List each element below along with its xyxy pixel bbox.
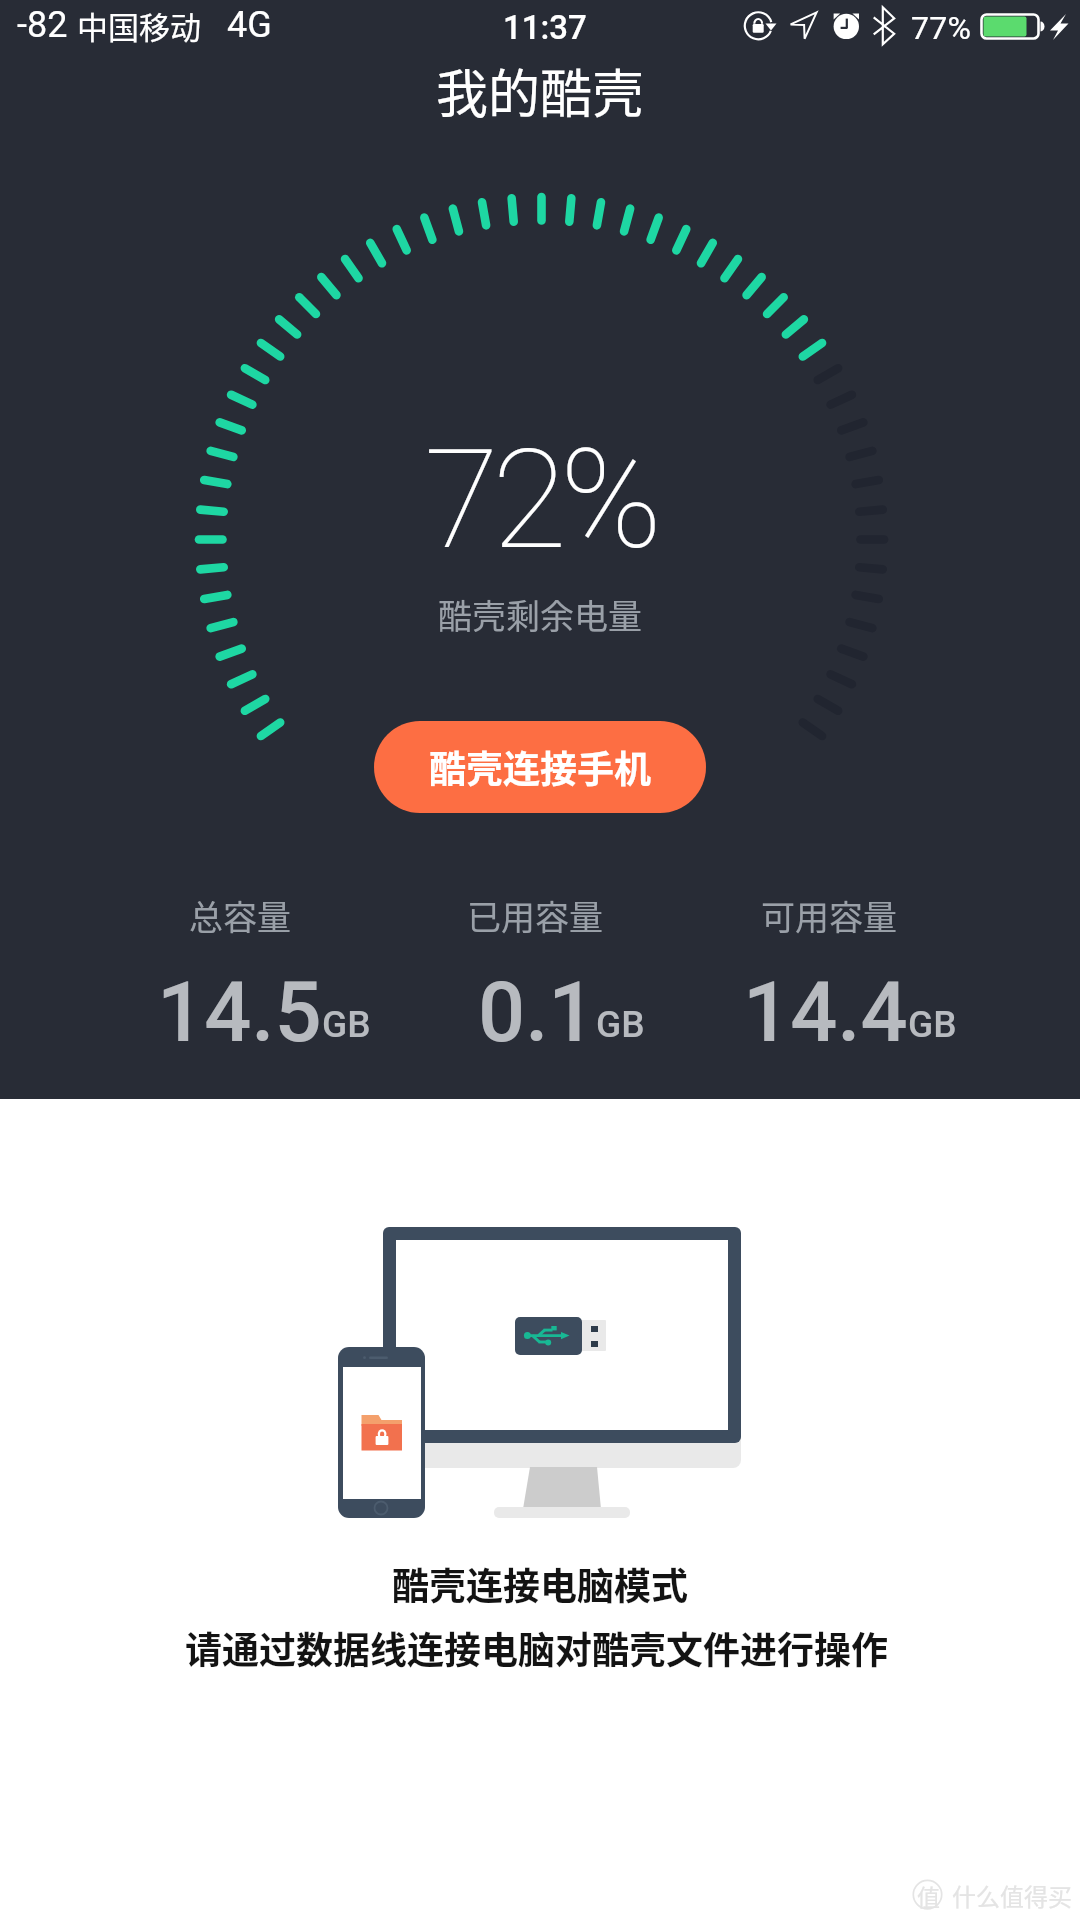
staticText: 值 — [917, 1879, 940, 1912]
staticText: -82 — [17, 4, 68, 46]
staticText: 可用容量 — [761, 891, 897, 940]
other: Status icons — [0, 0, 1080, 54]
staticText: 14.4 — [743, 964, 908, 1061]
staticText: 77% — [911, 9, 972, 47]
button[interactable]: 酷壳连接手机 — [374, 721, 706, 813]
staticText: 中国移动 — [77, 3, 201, 48]
staticText: 什么值得买 — [952, 1878, 1072, 1913]
staticText: 14.5 — [157, 964, 322, 1061]
staticText: 0.1 — [478, 964, 596, 1061]
staticText: 酷壳剩余电量 — [438, 590, 642, 639]
staticText: 请通过数据线连接电脑对酷壳文件进行操作 — [185, 1621, 888, 1675]
staticText: 已用容量 — [467, 891, 603, 940]
staticText: 酷壳连接电脑模式 — [392, 1557, 688, 1611]
staticText: 总容量 — [189, 891, 291, 940]
staticText: 我的酷壳 — [436, 53, 645, 128]
staticText: 酷壳连接手机 — [429, 740, 651, 794]
staticText: 72% — [424, 420, 656, 581]
staticText: 4G — [227, 4, 272, 46]
staticText: 11:37 — [503, 8, 587, 47]
staticText: GB — [322, 1003, 371, 1046]
staticText: GB — [596, 1003, 645, 1046]
staticText: GB — [908, 1003, 957, 1046]
